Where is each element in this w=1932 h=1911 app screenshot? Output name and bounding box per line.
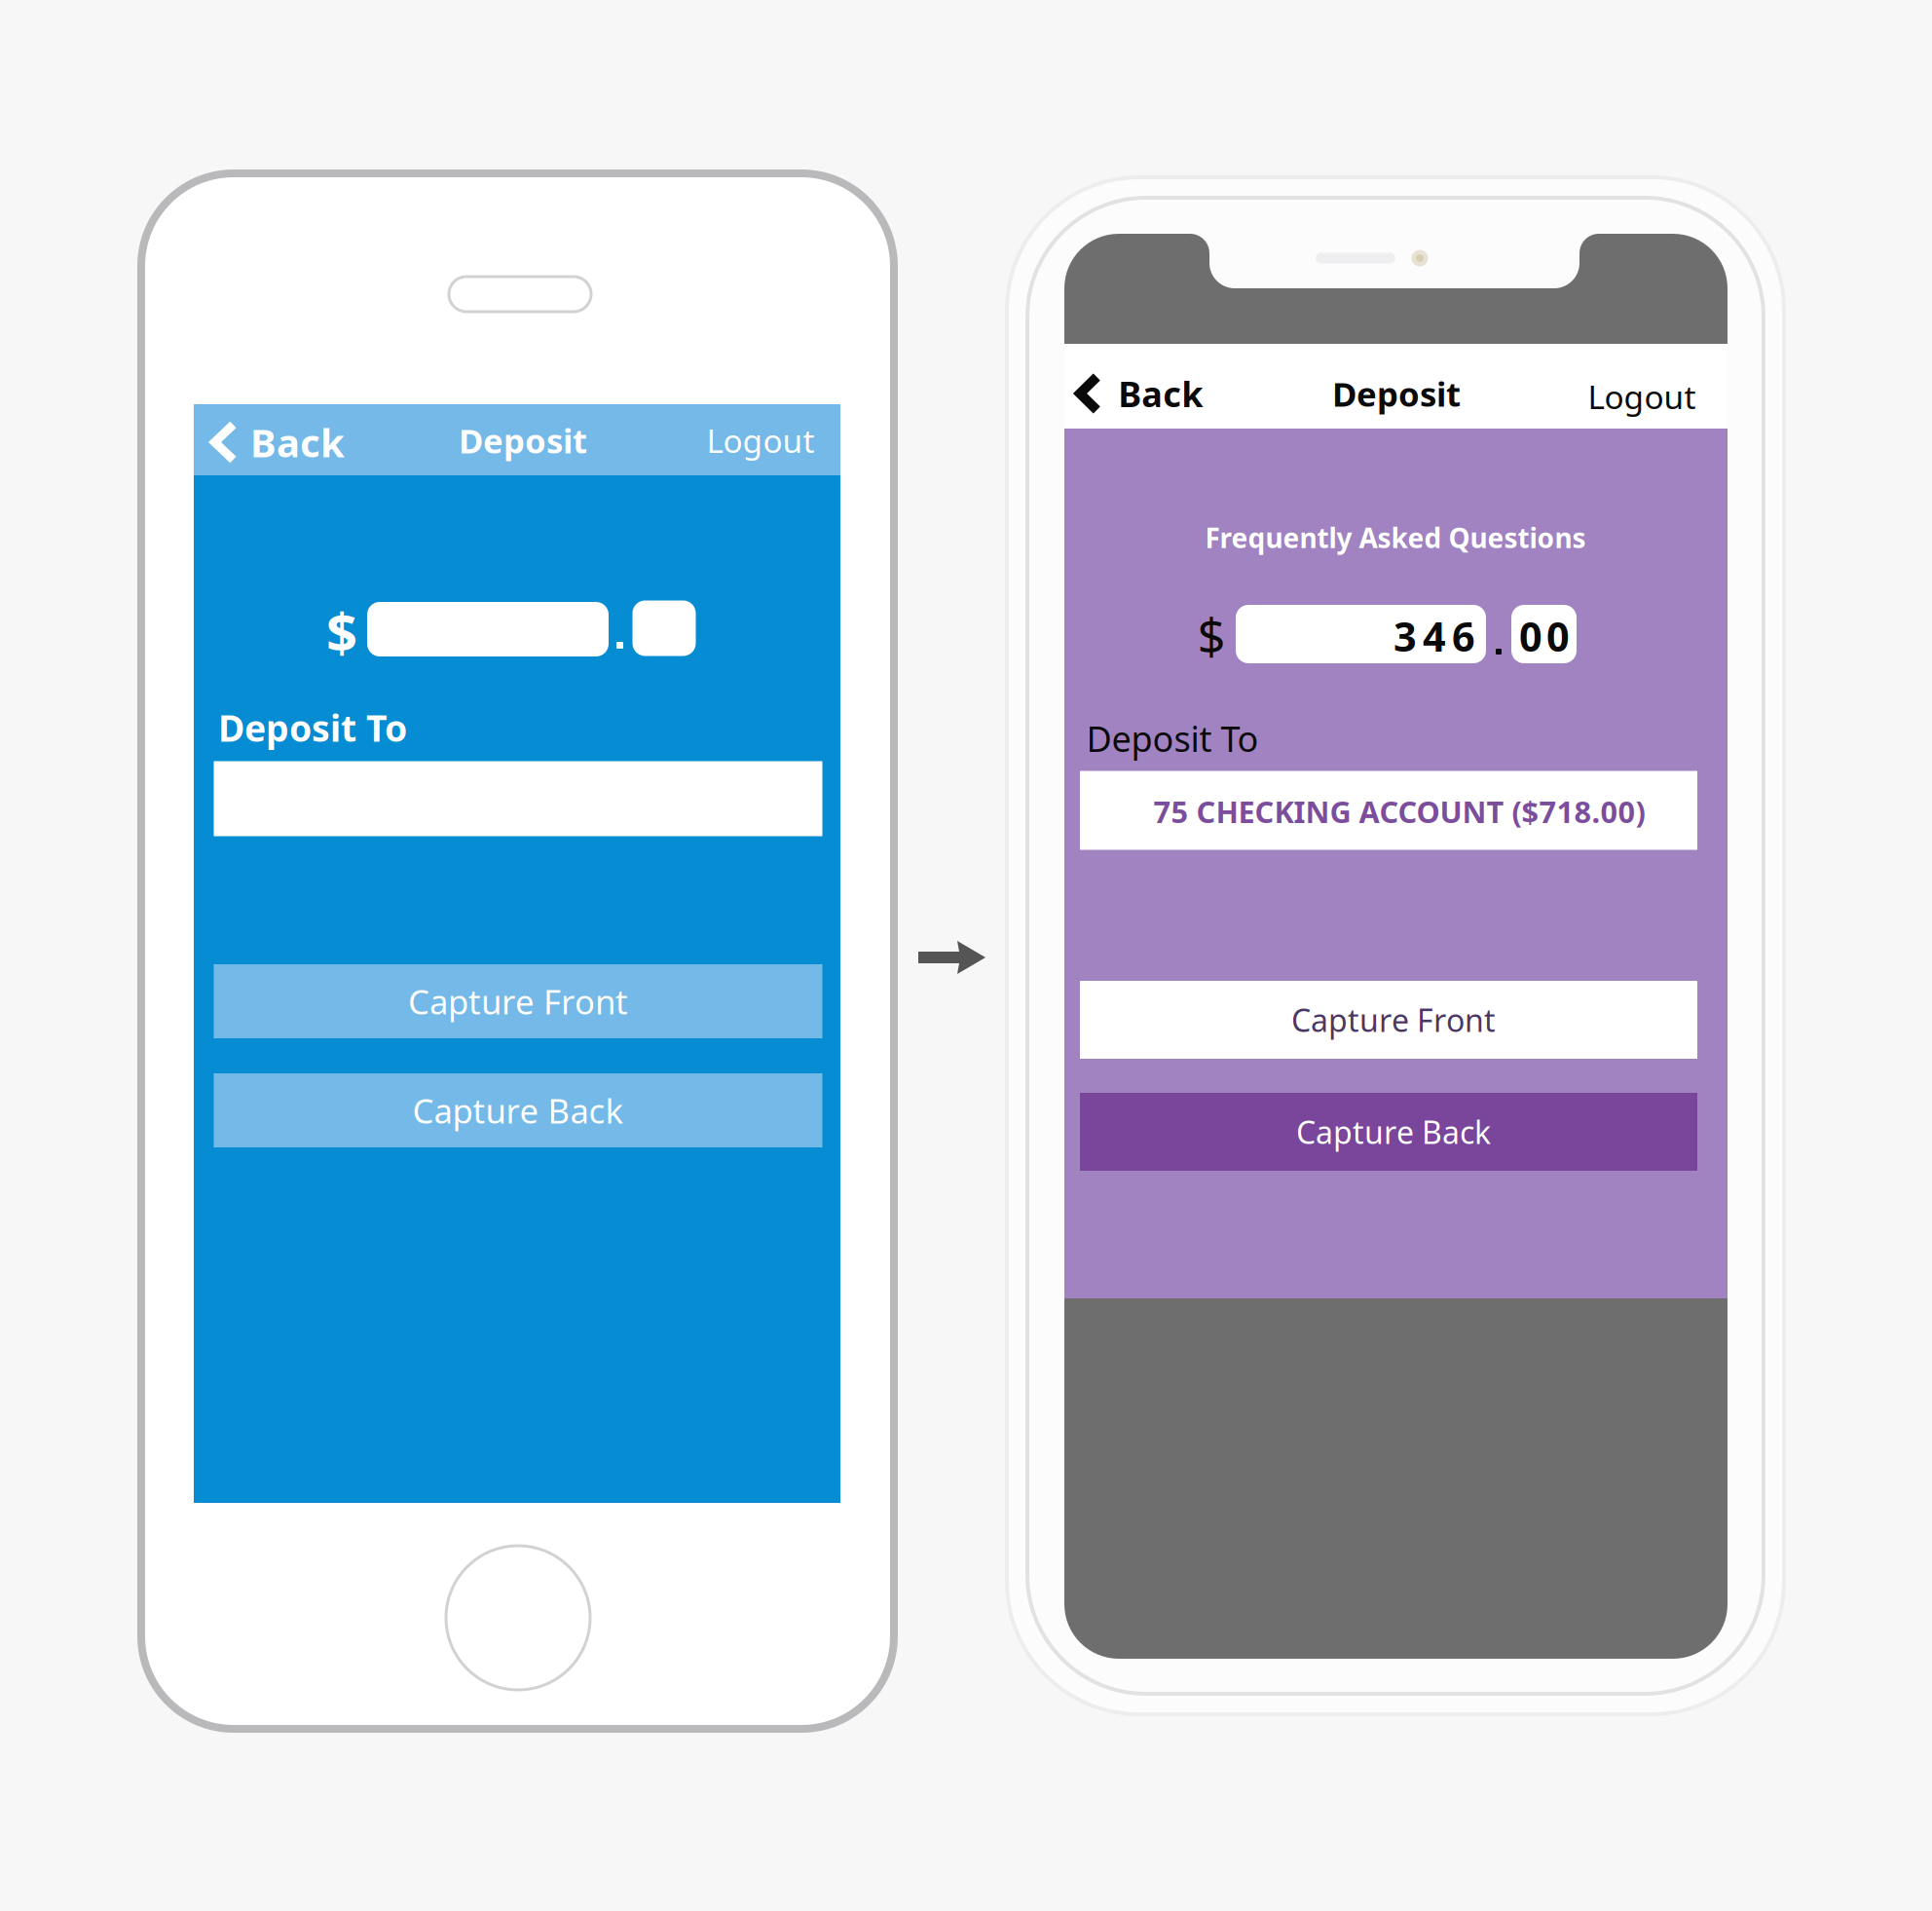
button[interactable]: Cents (632, 600, 696, 656)
staticText: Deposit To (1086, 715, 1259, 762)
staticText: Back (1118, 370, 1203, 417)
staticText: Logout (706, 419, 815, 462)
staticText: Capture Front (1291, 999, 1496, 1041)
staticText: 346 (1393, 609, 1475, 663)
button[interactable]: Capture Front (214, 964, 822, 1038)
staticText: Capture Back (412, 1088, 624, 1133)
staticText: Back (250, 416, 345, 468)
staticText: $ (326, 595, 357, 667)
button[interactable]: Capture Back (214, 1073, 822, 1147)
button[interactable]: Logout (1556, 354, 1728, 439)
staticText: 00 (1519, 609, 1570, 663)
staticText: Deposit (1332, 371, 1461, 416)
staticText: Logout (1588, 375, 1696, 418)
staticText: $ (1197, 603, 1226, 669)
button[interactable]: Back (194, 407, 389, 478)
staticText: Capture Front (408, 979, 628, 1024)
staticText: 75 CHECKING ACCOUNT ($718.00) (1153, 791, 1645, 831)
button[interactable]: Deposit To account (214, 761, 822, 836)
staticText: Frequently Asked Questions (1205, 520, 1586, 556)
staticText: Capture Back (1296, 1111, 1491, 1153)
button[interactable]: Dollars (367, 602, 609, 656)
staticText: Deposit (459, 418, 587, 463)
button[interactable]: Logout (688, 405, 833, 476)
button[interactable]: Capture Back (1080, 1093, 1697, 1171)
button[interactable]: Capture Front (1080, 981, 1697, 1059)
button[interactable]: 75 CHECKING ACCOUNT ($718.00) (1080, 771, 1697, 850)
button[interactable]: Back (1064, 351, 1259, 436)
staticText: Deposit To (218, 703, 407, 752)
